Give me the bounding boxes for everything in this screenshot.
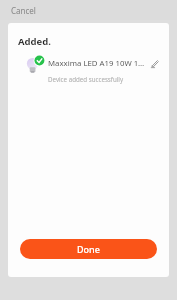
button[interactable]: Maxxima LED A19 10W 120V… — [8, 56, 169, 83]
staticText: Maxxima LED A19 10W 120V… — [48, 58, 145, 69]
button[interactable]: Rename device — [147, 56, 161, 70]
staticText: Added. — [18, 35, 51, 48]
staticText: Cancel — [11, 5, 36, 16]
button[interactable]: Cancel — [8, 2, 39, 19]
staticText: Done — [77, 243, 100, 255]
button[interactable]: Done — [20, 239, 157, 259]
staticText: Device added successfully — [48, 75, 124, 83]
